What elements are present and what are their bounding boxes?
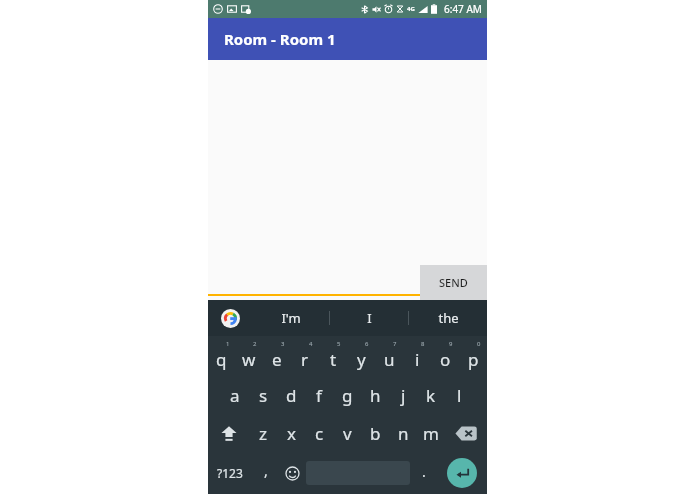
- button[interactable]: s: [249, 376, 277, 414]
- button[interactable]: I'm: [252, 300, 329, 336]
- staticText: 0: [477, 340, 481, 348]
- button[interactable]: 1: [208, 336, 235, 376]
- button[interactable]: 2: [235, 336, 263, 376]
- button[interactable]: 0: [459, 336, 487, 376]
- staticText: m: [423, 422, 439, 445]
- staticText: ,: [264, 461, 268, 480]
- staticText: 4G: [407, 5, 415, 13]
- button[interactable]: 6: [347, 336, 375, 376]
- button[interactable]: 9: [431, 336, 459, 376]
- staticText: y: [357, 348, 366, 371]
- staticText: j: [401, 384, 406, 407]
- button[interactable]: g: [333, 376, 361, 414]
- staticText: u: [384, 348, 395, 371]
- staticText: c: [315, 422, 324, 445]
- staticText: x: [287, 422, 296, 445]
- button[interactable]: Backspace: [445, 414, 487, 452]
- button[interactable]: z: [249, 414, 277, 452]
- button[interactable]: Enter: [447, 458, 477, 488]
- button[interactable]: c: [305, 414, 333, 452]
- staticText: n: [398, 422, 409, 445]
- button[interactable]: h: [361, 376, 389, 414]
- button[interactable]: Emoji: [279, 452, 306, 494]
- button[interactable]: a: [221, 376, 249, 414]
- button[interactable]: m: [417, 414, 445, 452]
- staticText: 9: [449, 340, 453, 348]
- staticText: e: [272, 348, 282, 371]
- button[interactable]: 7: [375, 336, 403, 376]
- staticText: d: [286, 384, 297, 407]
- staticText: 6: [365, 340, 369, 348]
- staticText: l: [457, 384, 462, 407]
- button[interactable]: n: [389, 414, 417, 452]
- staticText: s: [259, 384, 268, 407]
- button[interactable]: f: [305, 376, 333, 414]
- staticText: 2: [253, 340, 257, 348]
- button[interactable]: I: [330, 300, 408, 336]
- staticText: i: [415, 348, 420, 371]
- staticText: p: [468, 348, 479, 371]
- staticText: a: [230, 384, 240, 407]
- staticText: SEND: [439, 275, 468, 290]
- button[interactable]: SEND: [420, 265, 487, 300]
- button[interactable]: v: [333, 414, 361, 452]
- staticText: t: [330, 348, 337, 371]
- button[interactable]: x: [277, 414, 305, 452]
- button[interactable]: ,: [252, 452, 279, 494]
- button[interactable]: the: [409, 300, 487, 336]
- button[interactable]: 4: [291, 336, 319, 376]
- staticText: the: [438, 309, 459, 327]
- staticText: z: [259, 422, 267, 445]
- staticText: 8: [421, 340, 425, 348]
- staticText: k: [426, 384, 436, 407]
- staticText: w: [242, 348, 256, 371]
- staticText: b: [370, 422, 381, 445]
- staticText: 4: [309, 340, 313, 348]
- staticText: 1: [226, 340, 230, 348]
- staticText: .: [422, 462, 426, 481]
- staticText: 7: [393, 340, 397, 348]
- staticText: I: [367, 309, 372, 327]
- button[interactable]: 8: [403, 336, 431, 376]
- button[interactable]: Shift: [208, 414, 249, 452]
- staticText: r: [301, 348, 309, 371]
- staticText: q: [216, 348, 227, 371]
- staticText: 5: [337, 340, 341, 348]
- button[interactable]: Room - Room 1: [208, 18, 487, 60]
- button[interactable]: b: [361, 414, 389, 452]
- staticText: 6:47 AM: [444, 2, 482, 16]
- staticText: I'm: [281, 309, 301, 327]
- staticText: g: [342, 384, 353, 407]
- staticText: v: [343, 422, 352, 445]
- staticText: o: [440, 348, 451, 371]
- staticText: 3: [281, 340, 285, 348]
- button[interactable]: j: [389, 376, 417, 414]
- button[interactable]: l: [445, 376, 473, 414]
- button[interactable]: Google: [208, 300, 252, 336]
- button[interactable]: d: [277, 376, 305, 414]
- staticText: f: [316, 384, 322, 407]
- button[interactable]: .: [410, 452, 437, 494]
- button[interactable]: ?123: [208, 452, 252, 494]
- button[interactable]: k: [417, 376, 445, 414]
- staticText: h: [370, 384, 381, 407]
- button[interactable]: 3: [263, 336, 291, 376]
- staticText: ?123: [217, 465, 243, 481]
- staticText: Room - Room 1: [224, 29, 336, 49]
- button[interactable]: 5: [319, 336, 347, 376]
